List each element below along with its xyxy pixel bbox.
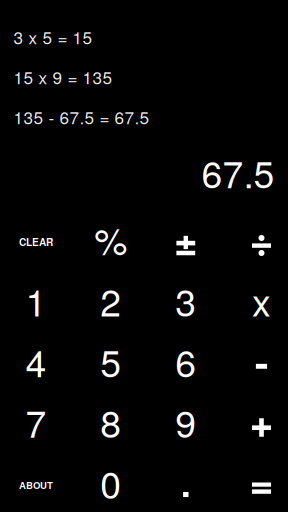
staticText: 15 x 9 = 135 [13, 65, 112, 89]
button[interactable]: % [73, 209, 148, 270]
button[interactable]: Equals [224, 455, 288, 512]
button[interactable]: 7 [0, 391, 73, 452]
staticText: 9 [175, 395, 196, 448]
staticText: 0 [100, 456, 121, 509]
button[interactable]: Plus or minus [148, 211, 223, 272]
button[interactable]: 4 [0, 331, 73, 392]
staticText: 135 - 67.5 = 67.5 [13, 104, 149, 129]
button[interactable]: Plus [224, 394, 288, 455]
staticText: x [252, 274, 271, 327]
staticText: 8 [100, 395, 121, 448]
staticText: 67.5 [201, 145, 274, 199]
button[interactable]: Minus [224, 333, 288, 394]
button[interactable]: 9 [148, 391, 223, 452]
button[interactable]: x [224, 270, 288, 331]
staticText: 6 [175, 334, 196, 388]
button[interactable]: CLEAR [0, 211, 73, 272]
button[interactable]: 2 [73, 270, 148, 331]
button[interactable]: 3 [148, 270, 223, 331]
staticText: CLEAR [19, 234, 53, 249]
staticText: 1 [25, 274, 46, 327]
staticText: % [94, 212, 127, 266]
staticText: 3 [175, 274, 196, 327]
button[interactable]: Divide [224, 211, 288, 272]
button[interactable]: ABOUT [0, 455, 73, 512]
staticText: 2 [100, 274, 121, 327]
staticText: 4 [25, 334, 46, 388]
button[interactable]: Decimal point [148, 455, 223, 512]
button[interactable]: 0 [73, 452, 148, 512]
staticText: 5 [100, 334, 121, 388]
staticText: 3 x 5 = 15 [13, 25, 92, 49]
button[interactable]: 8 [73, 391, 148, 452]
button[interactable]: 5 [73, 331, 148, 392]
button[interactable]: 6 [148, 331, 223, 392]
button[interactable]: 1 [0, 270, 73, 331]
staticText: ABOUT [19, 478, 53, 492]
staticText: 7 [25, 395, 46, 448]
